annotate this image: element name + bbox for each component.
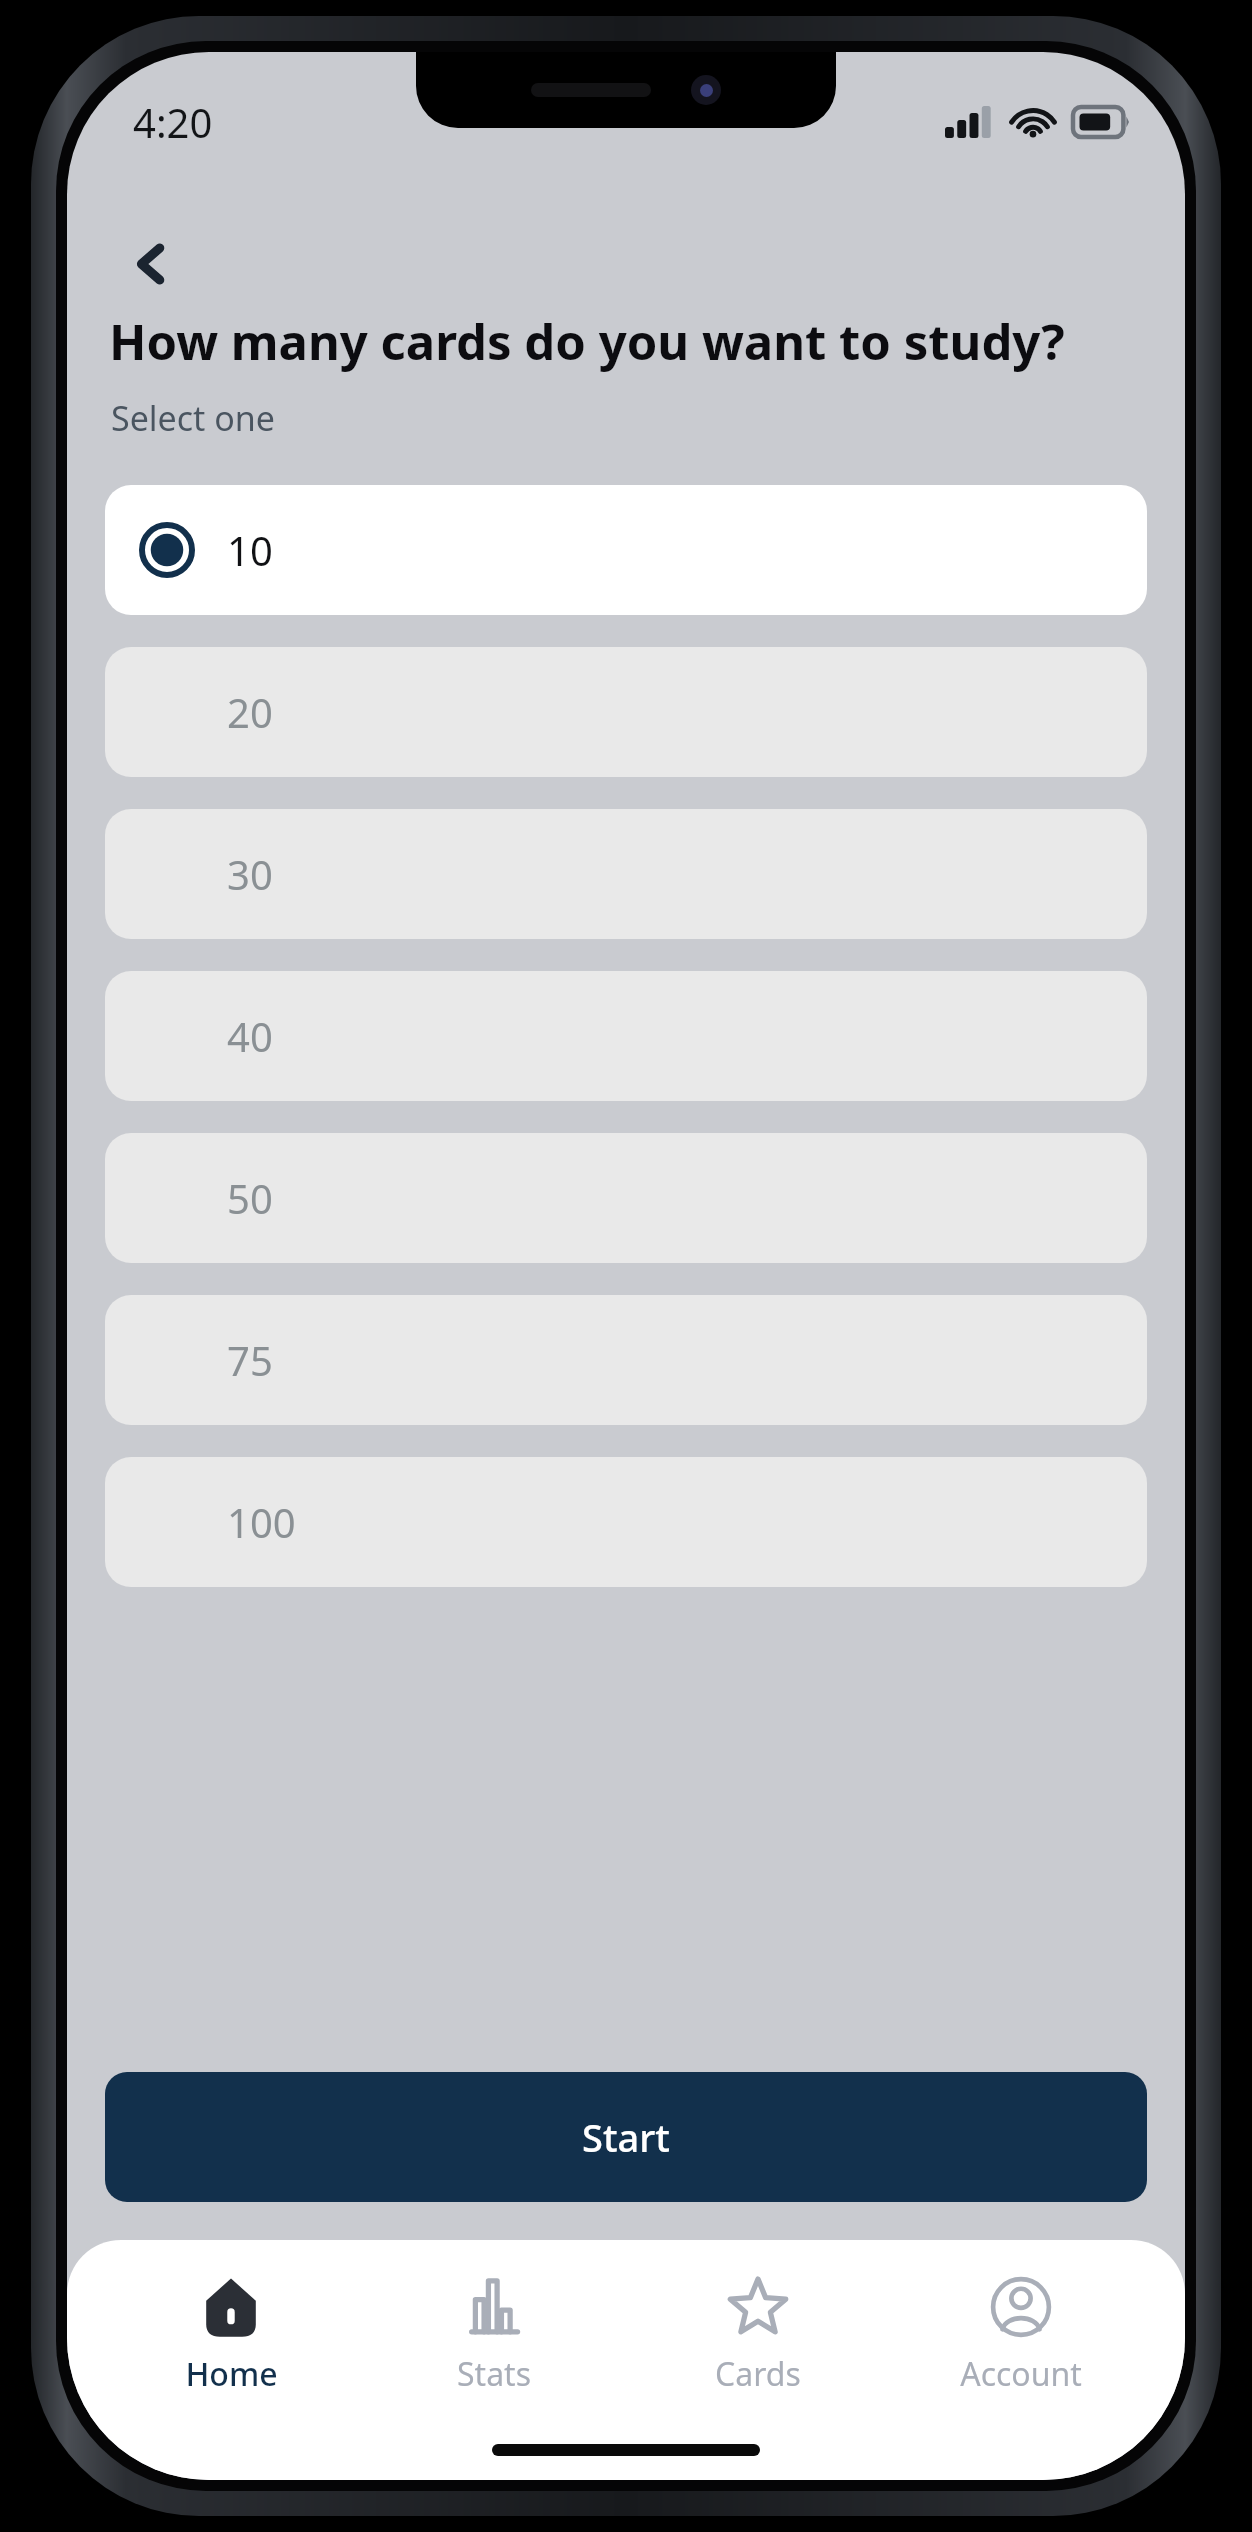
button[interactable]: Account — [921, 2276, 1121, 2396]
staticText: 75 — [227, 1333, 273, 1387]
staticText: Account — [960, 2352, 1082, 2396]
button[interactable]: 20 — [105, 647, 1147, 777]
staticText: 20 — [227, 685, 273, 739]
staticText: Home — [185, 2352, 278, 2396]
staticText: 50 — [227, 1171, 273, 1225]
staticText: Select one — [111, 395, 275, 441]
staticText: 40 — [227, 1009, 273, 1063]
button[interactable]: Home — [131, 2276, 331, 2396]
button[interactable]: 100 — [105, 1457, 1147, 1587]
button[interactable]: 10 — [105, 485, 1147, 615]
staticText: 10 — [227, 523, 273, 577]
staticText: Cards — [715, 2352, 801, 2396]
button[interactable]: Back — [113, 226, 189, 302]
staticText: Start — [582, 2111, 670, 2163]
staticText: 100 — [227, 1495, 296, 1549]
button[interactable]: 40 — [105, 971, 1147, 1101]
button[interactable]: Stats — [394, 2276, 594, 2396]
button[interactable]: Cards — [658, 2276, 858, 2396]
staticText: Stats — [457, 2352, 531, 2396]
button[interactable]: 30 — [105, 809, 1147, 939]
staticText: How many cards do you want to study? — [109, 308, 1065, 375]
button[interactable]: Start — [105, 2072, 1147, 2202]
button[interactable]: 75 — [105, 1295, 1147, 1425]
staticText: 30 — [227, 847, 273, 901]
button[interactable]: 50 — [105, 1133, 1147, 1263]
staticText: 4:20 — [133, 95, 213, 149]
